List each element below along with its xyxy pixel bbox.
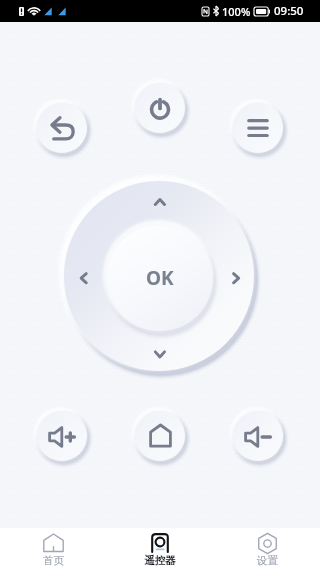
staticText: 设置: [257, 554, 278, 567]
button[interactable]: Volume up: [23, 397, 101, 475]
button[interactable]: 首页: [8, 528, 98, 569]
staticText: 100%: [222, 4, 251, 19]
button[interactable]: Direction pad: [48, 165, 270, 387]
button[interactable]: 设置: [222, 528, 312, 569]
button[interactable]: Power: [121, 69, 199, 147]
button[interactable]: OK: [107, 225, 213, 331]
button[interactable]: 遥控器: [115, 528, 205, 569]
button[interactable]: Volume down: [219, 397, 297, 475]
staticText: 遥控器: [144, 554, 176, 567]
staticText: 09:50: [274, 3, 304, 19]
button[interactable]: Menu: [219, 89, 297, 167]
button[interactable]: Home: [121, 397, 199, 475]
staticText: OK: [146, 265, 174, 291]
button[interactable]: Back: [23, 89, 101, 167]
staticText: 首页: [43, 554, 64, 567]
